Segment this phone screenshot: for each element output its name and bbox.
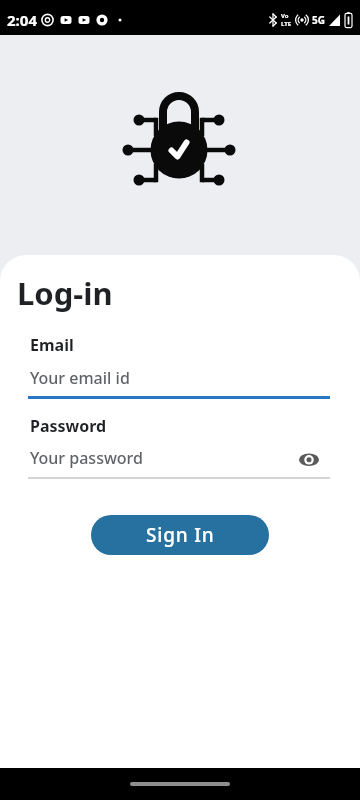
- staticText: Vo: [281, 12, 289, 20]
- button[interactable]: Your email id: [28, 358, 330, 399]
- staticText: 5G: [312, 13, 325, 27]
- button[interactable]: [299, 453, 319, 466]
- button[interactable]: Sign In: [91, 515, 269, 555]
- staticText: 2:04: [7, 10, 37, 30]
- staticText: Log-in: [17, 272, 113, 314]
- button[interactable]: Your password: [28, 438, 330, 479]
- staticText: Your email id: [30, 367, 130, 389]
- staticText: LTE: [281, 20, 292, 28]
- staticText: Password: [30, 415, 107, 437]
- staticText: Sign In: [146, 522, 215, 548]
- staticText: Email: [30, 334, 74, 356]
- staticText: Your password: [30, 447, 143, 469]
